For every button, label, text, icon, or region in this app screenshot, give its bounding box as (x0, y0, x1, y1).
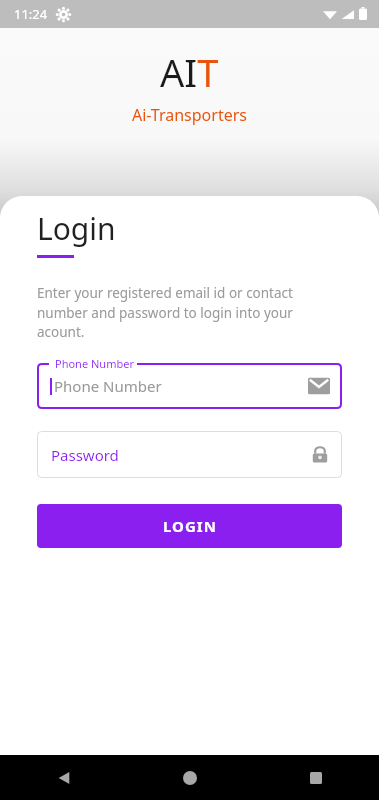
button[interactable]: Home (127, 755, 253, 800)
staticText: Login (37, 208, 116, 249)
other: Password (310, 445, 330, 465)
staticText: Ai-Transporters (132, 104, 247, 126)
staticText: Password (51, 445, 310, 465)
staticText: Enter your registered email id or contac… (37, 284, 342, 341)
button[interactable]: LOGIN (37, 504, 342, 548)
staticText: 11:24 (14, 5, 48, 23)
staticText: AIT (160, 46, 219, 98)
button[interactable]: Phone Number (37, 363, 342, 409)
other: Email (308, 375, 330, 397)
staticText: Phone Number (54, 376, 308, 396)
button[interactable]: Back (0, 755, 127, 800)
staticText: LOGIN (163, 516, 217, 536)
staticText: Phone Number (55, 356, 134, 371)
button[interactable]: Recent apps (253, 755, 379, 800)
button[interactable]: Password (37, 431, 342, 478)
